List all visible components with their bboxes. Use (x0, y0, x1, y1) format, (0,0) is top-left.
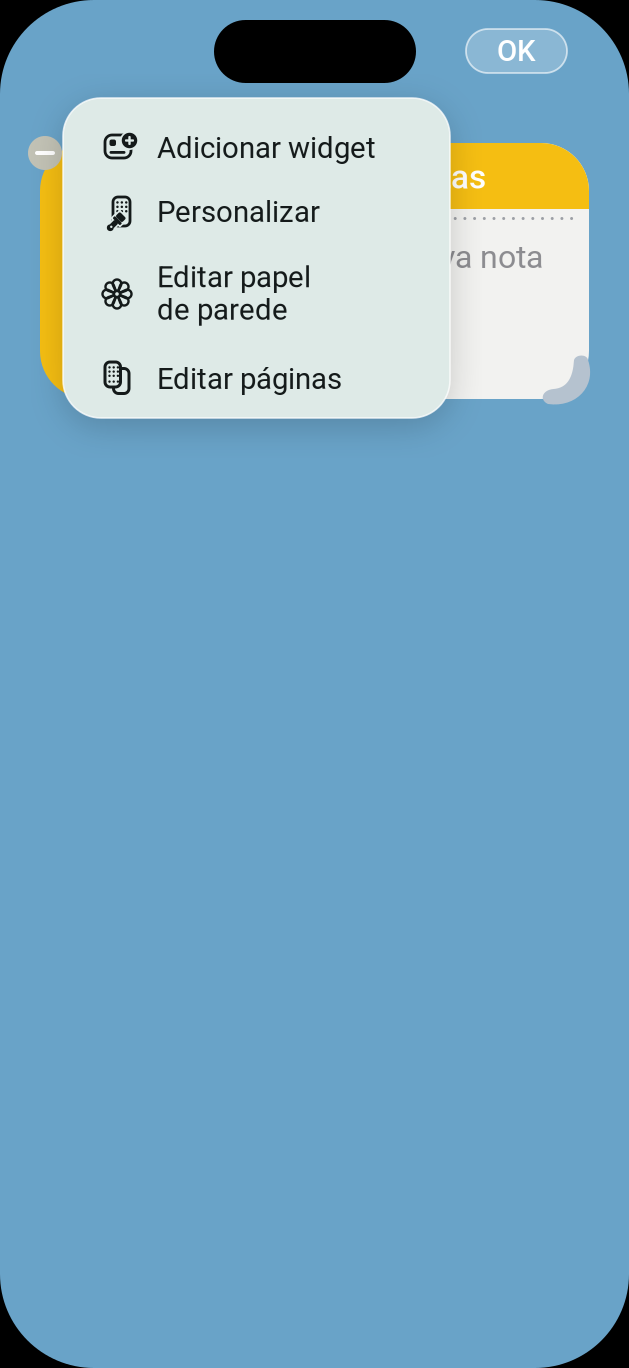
staticText: OK (497, 34, 536, 68)
staticText: de parede (157, 292, 288, 327)
staticText: Nova nota (399, 238, 543, 276)
staticText: Editar páginas (157, 362, 342, 396)
staticText: Notas (397, 157, 486, 197)
button[interactable]: Editar páginas (63, 347, 450, 411)
staticText: Adicionar widget (157, 131, 376, 165)
button[interactable]: Personalizar (63, 180, 450, 244)
button[interactable]: Remover widget (23, 131, 67, 175)
button[interactable]: OK (466, 29, 567, 73)
staticText: Personalizar (157, 195, 320, 229)
button[interactable]: Adicionar widget (63, 116, 450, 180)
button[interactable]: Editar papel (63, 246, 450, 341)
staticText: Editar papel (157, 260, 311, 294)
